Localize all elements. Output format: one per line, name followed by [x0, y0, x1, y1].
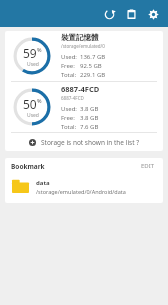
staticText: 裝置記憶體: [61, 33, 99, 42]
staticText: Used: [27, 112, 39, 119]
staticText: 7.6 GB: [80, 123, 99, 131]
staticText: Storage is not shown in the list ?: [41, 138, 140, 147]
staticText: Bookmark: [11, 162, 139, 171]
staticText: Used: [27, 61, 39, 68]
button[interactable]: 50: [5, 82, 163, 132]
staticText: data: [36, 179, 50, 187]
staticText: Total:: [61, 71, 80, 79]
button[interactable]: Refresh: [98, 3, 120, 25]
button[interactable]: Saved items: [120, 3, 142, 25]
staticText: Used:: [61, 53, 80, 61]
staticText: %: [37, 46, 42, 53]
staticText: %: [37, 97, 42, 104]
staticText: Free:: [61, 62, 80, 70]
staticText: 92.5 GB: [80, 62, 102, 70]
button[interactable]: 59: [5, 31, 163, 81]
staticText: 59: [23, 45, 37, 61]
staticText: EDIT: [141, 162, 155, 170]
staticText: 6887-4FCD: [61, 95, 84, 101]
staticText: 50: [23, 96, 37, 112]
staticText: Used:: [61, 105, 80, 113]
button[interactable]: Storage is not shown in the list ?: [5, 133, 163, 151]
staticText: 136.7 GB: [80, 53, 106, 61]
staticText: 229.1 GB: [80, 71, 106, 79]
staticText: /storage/emulated/0: [61, 43, 105, 49]
button[interactable]: Settings: [142, 3, 164, 25]
staticText: Free:: [61, 114, 80, 122]
button[interactable]: data: [5, 174, 163, 200]
button[interactable]: EDIT: [139, 160, 157, 172]
staticText: 3.8 GB: [80, 105, 99, 113]
staticText: /storage/emulated/0/Android/data: [36, 188, 126, 195]
staticText: 6887-4FCD: [61, 84, 100, 94]
staticText: 3.8 GB: [80, 114, 99, 122]
staticText: Total:: [61, 123, 80, 131]
